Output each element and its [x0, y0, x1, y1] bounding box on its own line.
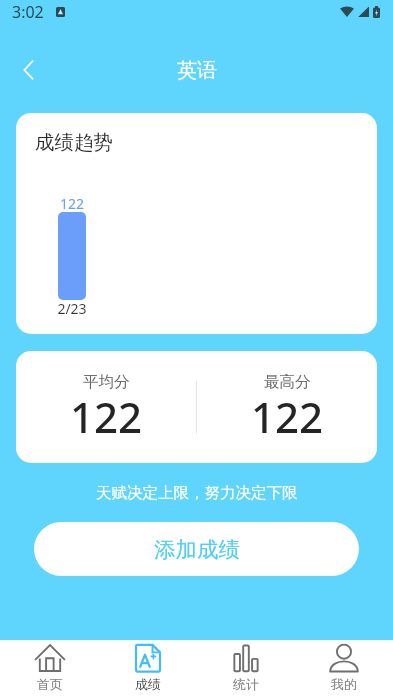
staticText: 最高分: [264, 372, 311, 392]
staticText: 成绩: [135, 676, 161, 692]
staticText: 122: [70, 388, 143, 445]
staticText: 天赋决定上限，努力决定下限: [96, 483, 298, 503]
button[interactable]: 我的: [295, 640, 393, 700]
staticText: 2/23: [38, 299, 106, 318]
staticText: 3:02: [12, 1, 44, 23]
staticText: 122: [38, 194, 106, 213]
staticText: 英语: [177, 58, 217, 83]
staticText: 首页: [37, 676, 63, 692]
button[interactable]: 添加成绩: [34, 522, 359, 576]
button[interactable]: Back: [4, 46, 52, 94]
staticText: 122: [251, 388, 324, 445]
staticText: 成绩趋势: [35, 130, 113, 155]
button[interactable]: 成绩: [99, 640, 197, 700]
staticText: 我的: [331, 676, 357, 692]
button[interactable]: 统计: [197, 640, 295, 700]
staticText: 平均分: [83, 372, 130, 392]
staticText: 统计: [233, 676, 259, 692]
button[interactable]: 首页: [0, 640, 99, 700]
staticText: 添加成绩: [154, 536, 240, 563]
